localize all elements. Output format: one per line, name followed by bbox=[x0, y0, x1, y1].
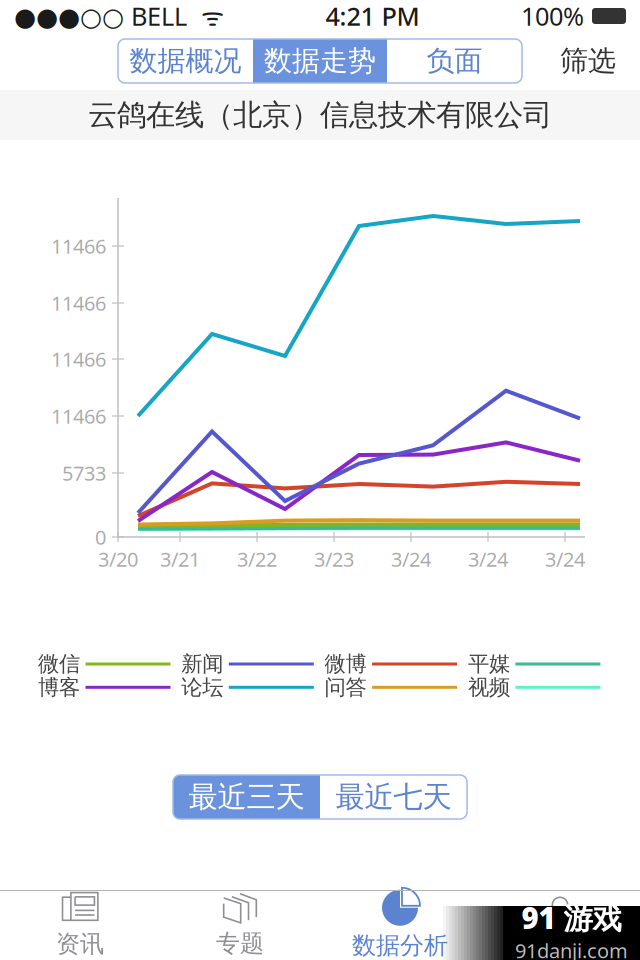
staticText: 新闻 bbox=[181, 651, 223, 677]
staticText: 11466 bbox=[51, 346, 106, 372]
staticText: 我的 bbox=[536, 928, 584, 957]
staticText: 数据概况 bbox=[129, 44, 241, 78]
staticText: 3/24 bbox=[391, 546, 431, 572]
staticText: 数据走势 bbox=[264, 44, 376, 78]
button[interactable]: 最近七天 bbox=[320, 775, 467, 819]
staticText: 资讯 bbox=[56, 929, 104, 959]
staticText: 最近七天 bbox=[335, 779, 451, 815]
staticText: 3/21 bbox=[160, 546, 200, 572]
button[interactable]: 数据分析 bbox=[320, 890, 480, 960]
staticText: 4:21 PM bbox=[325, 0, 419, 33]
staticText: 100% bbox=[521, 0, 584, 33]
button[interactable]: 筛选 bbox=[550, 44, 626, 78]
staticText: 专题 bbox=[216, 929, 264, 958]
staticText: 11466 bbox=[51, 403, 106, 429]
button[interactable]: 专题 bbox=[160, 890, 320, 960]
staticText: 数据分析 bbox=[352, 931, 448, 960]
staticText: 3/24 bbox=[545, 546, 585, 572]
staticText: 5733 bbox=[62, 460, 106, 486]
staticText: 负面 bbox=[426, 44, 482, 78]
staticText: 3/20 bbox=[98, 546, 138, 572]
staticText: 问答 bbox=[325, 674, 367, 700]
button[interactable]: 最近三天 bbox=[173, 775, 320, 819]
button[interactable]: 资讯 bbox=[0, 890, 160, 960]
staticText: 11466 bbox=[51, 290, 106, 316]
button[interactable]: 负面 bbox=[387, 39, 522, 83]
button[interactable]: 数据概况 bbox=[118, 39, 253, 83]
staticText: 平媒 bbox=[468, 651, 510, 677]
staticText: 视频 bbox=[468, 674, 510, 700]
button[interactable]: 我的 bbox=[480, 890, 640, 960]
staticText: 最近三天 bbox=[188, 779, 304, 815]
staticText: 微博 bbox=[325, 651, 367, 677]
staticText: 云鸽在线（北京）信息技术有限公司 bbox=[88, 97, 552, 133]
button[interactable]: 数据走势 bbox=[253, 39, 387, 83]
staticText: 91danji.com bbox=[515, 937, 628, 960]
staticText: 博客 bbox=[38, 674, 80, 700]
staticText: 3/22 bbox=[237, 546, 277, 572]
staticText: 3/24 bbox=[468, 546, 508, 572]
staticText: 论坛 bbox=[181, 674, 223, 700]
staticText: ●●●○○ BELL ᯤ bbox=[14, 0, 224, 33]
staticText: 3/23 bbox=[314, 546, 354, 572]
staticText: 筛选 bbox=[560, 44, 616, 78]
staticText: 91 游戏 bbox=[521, 898, 621, 937]
staticText: 微信 bbox=[38, 651, 80, 677]
staticText: 0 bbox=[95, 524, 106, 550]
staticText: 11466 bbox=[51, 233, 106, 259]
